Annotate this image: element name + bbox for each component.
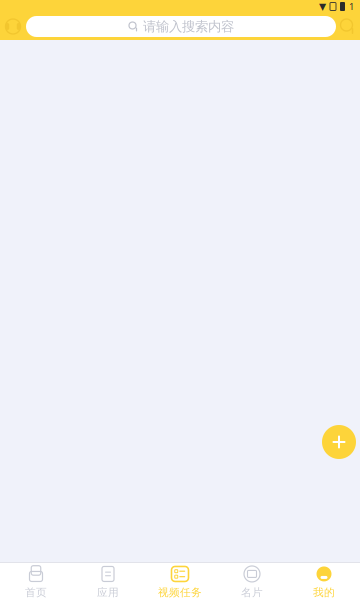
staticText: 视频任务 — [158, 586, 202, 599]
staticText: 请输入搜索内容 — [143, 18, 234, 35]
button[interactable]: 我的 — [288, 563, 360, 600]
staticText: ▼ — [319, 1, 326, 12]
button[interactable]: 名片 — [216, 563, 288, 600]
staticText: 1 — [349, 0, 354, 13]
staticText: 我的 — [313, 586, 335, 599]
staticText: 首页 — [25, 586, 47, 599]
button[interactable]: 首页 — [0, 563, 72, 600]
button[interactable]: 请输入搜索内容 — [26, 16, 336, 37]
button[interactable]: 视频任务 — [144, 563, 216, 600]
staticText: 应用 — [97, 586, 119, 599]
button[interactable]: 新建 — [319, 422, 359, 462]
button[interactable]: Search — [336, 14, 360, 38]
button[interactable]: 应用 — [72, 563, 144, 600]
button[interactable]: 客服 — [0, 13, 26, 39]
staticText: 名片 — [241, 586, 263, 599]
